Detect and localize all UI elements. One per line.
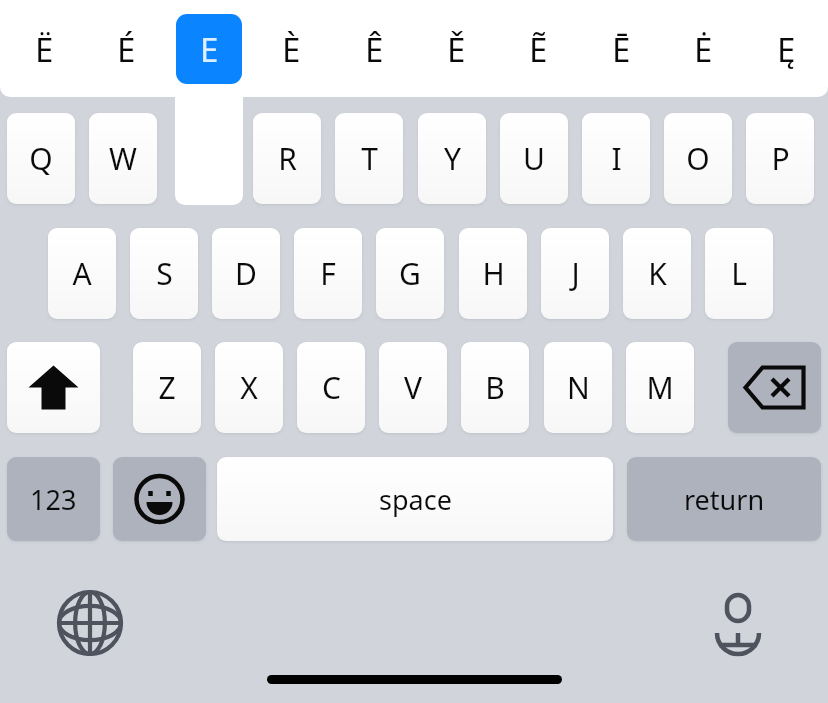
button[interactable]: Dictation (698, 583, 778, 663)
staticText: X (240, 367, 258, 408)
staticText: P (771, 138, 790, 179)
staticText: L (731, 253, 747, 294)
staticText: H (482, 253, 505, 294)
button[interactable]: Emoji (113, 457, 206, 541)
button[interactable]: O (664, 113, 732, 204)
staticText: I (611, 138, 622, 179)
staticText: Ē (612, 27, 631, 72)
staticText: Q (29, 138, 53, 179)
staticText: Ę (777, 27, 796, 72)
button[interactable]: Ẽ (505, 10, 571, 88)
button[interactable]: Shift (7, 342, 100, 433)
button[interactable]: K (623, 228, 691, 319)
button[interactable]: W (89, 113, 157, 204)
staticText: A (72, 253, 92, 294)
button[interactable]: N (544, 342, 612, 433)
button[interactable]: space (217, 457, 613, 541)
button[interactable]: E (176, 14, 242, 84)
staticText: W (109, 138, 137, 179)
button[interactable]: J (541, 228, 609, 319)
button[interactable]: Z (133, 342, 201, 433)
staticText: Ė (694, 27, 713, 72)
button[interactable]: D (212, 228, 280, 319)
staticText: O (686, 138, 710, 179)
button[interactable]: A (48, 228, 116, 319)
button[interactable]: Y (418, 113, 486, 204)
button[interactable]: É (93, 10, 159, 88)
button[interactable]: U (500, 113, 568, 204)
staticText: E (200, 27, 219, 72)
staticText: return (684, 481, 765, 518)
button[interactable]: X (215, 342, 283, 433)
button[interactable]: Ê (341, 10, 407, 88)
staticText: K (648, 253, 667, 294)
staticText: Ë (35, 27, 54, 72)
button[interactable]: I (582, 113, 650, 204)
button[interactable]: return (627, 457, 821, 541)
button[interactable]: Ė (670, 10, 736, 88)
staticText: T (361, 138, 378, 179)
button[interactable]: Ě (423, 10, 489, 88)
button[interactable]: Backspace (728, 342, 821, 433)
staticText: Ě (447, 27, 466, 72)
staticText: G (399, 253, 421, 294)
staticText: R (278, 138, 297, 179)
button[interactable]: B (461, 342, 529, 433)
staticText: 123 (30, 481, 77, 518)
staticText: É (117, 27, 136, 72)
staticText: S (156, 253, 173, 294)
button[interactable]: 123 (7, 457, 100, 541)
button[interactable]: V (379, 342, 447, 433)
button[interactable]: R (253, 113, 321, 204)
staticText: C (322, 367, 341, 408)
staticText: Z (158, 367, 176, 408)
button[interactable]: G (376, 228, 444, 319)
button[interactable]: Ë (11, 10, 77, 88)
staticText: V (404, 367, 422, 408)
button[interactable]: Change keyboard (50, 583, 130, 663)
staticText: D (235, 253, 257, 294)
staticText: J (571, 253, 580, 294)
staticText: F (320, 253, 336, 294)
staticText: N (567, 367, 590, 408)
staticText: M (646, 367, 674, 408)
staticText: B (485, 367, 505, 408)
button[interactable]: C (297, 342, 365, 433)
button[interactable]: P (746, 113, 814, 204)
staticText: Y (444, 138, 461, 179)
button[interactable]: Q (7, 113, 75, 204)
staticText: Ẽ (529, 27, 548, 72)
button[interactable]: S (130, 228, 198, 319)
staticText: U (523, 138, 545, 179)
staticText: È (282, 27, 301, 72)
button[interactable]: È (258, 10, 324, 88)
button[interactable]: Ē (588, 10, 654, 88)
button[interactable]: T (335, 113, 403, 204)
staticText: Ê (365, 27, 384, 72)
button[interactable]: M (626, 342, 694, 433)
button[interactable]: H (459, 228, 527, 319)
button[interactable]: Ę (753, 10, 819, 88)
staticText: space (379, 481, 452, 518)
button[interactable]: F (294, 228, 362, 319)
button[interactable]: L (705, 228, 773, 319)
